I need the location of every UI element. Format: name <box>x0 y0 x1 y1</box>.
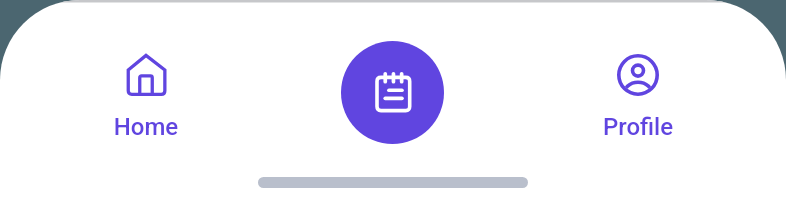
staticText: Profile <box>578 113 698 141</box>
staticText: Home <box>86 113 206 141</box>
button[interactable]: Home <box>86 53 206 141</box>
button[interactable]: Profile <box>578 53 698 141</box>
button[interactable]: New note <box>341 41 444 144</box>
